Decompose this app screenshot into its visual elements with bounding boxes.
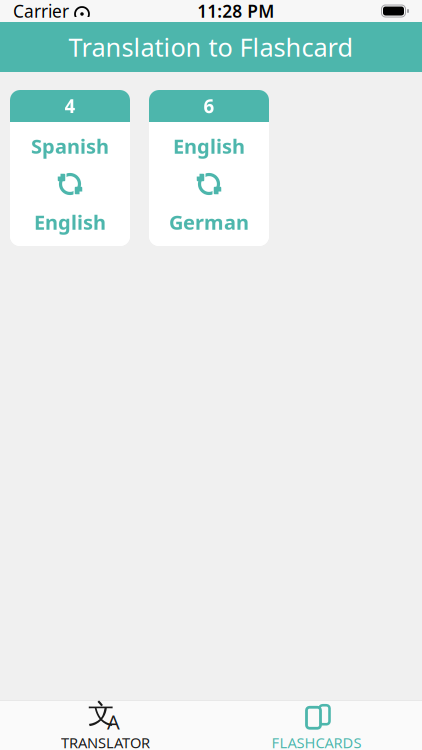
staticText: 文 (88, 697, 115, 730)
button[interactable]: 文 (0, 699, 211, 750)
button[interactable]: 6 (149, 90, 269, 246)
staticText: A (107, 708, 120, 735)
staticText: 4 (64, 94, 75, 118)
staticText: Translation to Flashcard (68, 30, 353, 64)
button[interactable]: 4 (10, 90, 130, 246)
staticText: Carrier (13, 0, 69, 22)
staticText: English (173, 133, 245, 159)
staticText: Spanish (31, 133, 109, 159)
staticText: 11:28 PM (197, 0, 274, 22)
staticText: FLASHCARDS (271, 733, 361, 750)
staticText: 6 (203, 94, 214, 118)
staticText: TRANSLATOR (61, 733, 150, 750)
button[interactable]: FLASHCARDS (211, 699, 422, 750)
staticText: German (169, 209, 249, 235)
staticText: English (34, 209, 106, 235)
